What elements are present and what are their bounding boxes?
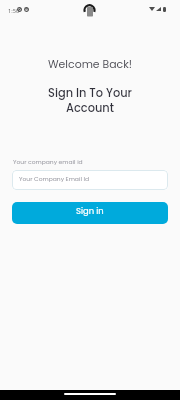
staticText: Your Company Email Id (19, 175, 90, 183)
staticText: Sign In To Your Account (0, 85, 180, 116)
staticText: 1:50 (8, 7, 20, 15)
staticText: Your company email id (13, 158, 83, 166)
staticText: Welcome Back! (0, 57, 180, 72)
button[interactable]: Your Company Email Id (12, 170, 168, 190)
button[interactable]: Sign in (12, 202, 168, 224)
staticText: Sign in (76, 205, 104, 217)
